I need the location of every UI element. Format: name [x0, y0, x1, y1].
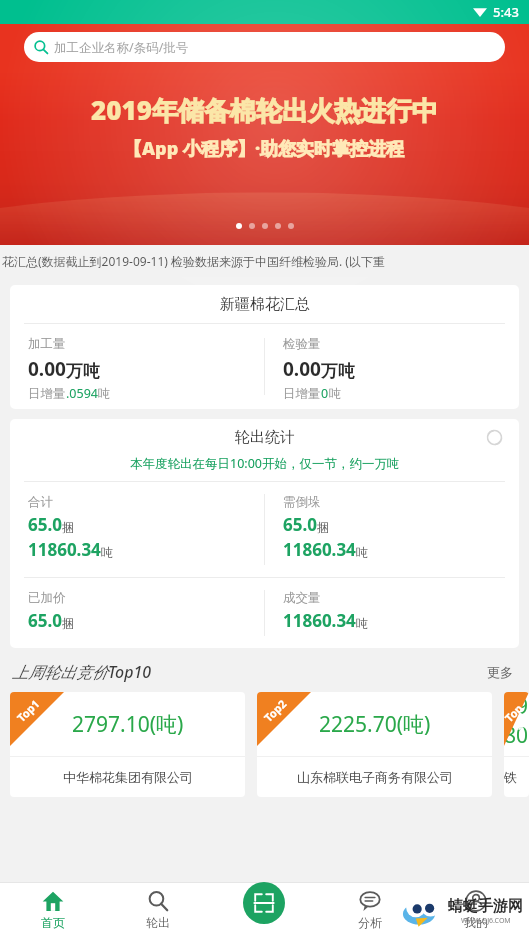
button[interactable]: 分析 — [317, 882, 423, 940]
staticText: 蜻蜓手游网 — [448, 897, 523, 916]
staticText: 万吨 — [321, 361, 355, 382]
staticText: 首页 — [41, 915, 65, 930]
staticText: 65.0 — [283, 513, 317, 536]
staticText: 花汇总(数据截止到2019-09-11) 检验数据来源于中国纤维检验局. (以下… — [2, 253, 385, 269]
staticText: 0.00 — [28, 356, 66, 382]
staticText: 万吨 — [66, 361, 100, 382]
button[interactable]: 更多 — [483, 660, 517, 684]
staticText: 65.0 — [28, 609, 62, 632]
staticText: 上周轮出竞价Top10 — [12, 661, 152, 683]
staticText: 山东棉联电子商务有限公司 — [297, 769, 453, 785]
staticText: 加工企业名称/条码/批号 — [54, 39, 189, 56]
staticText: 11860.34 — [283, 538, 356, 561]
button[interactable]: 2225.70(吨) — [257, 692, 492, 797]
button[interactable]: 扫一扫 — [243, 882, 285, 924]
staticText: 2797.10(吨) — [72, 710, 184, 739]
staticText: 成交量 — [283, 590, 321, 606]
staticText: 我的 — [464, 915, 488, 930]
staticText: 吨 — [356, 616, 369, 632]
button[interactable]: 刷新 — [481, 424, 507, 450]
staticText: 2019年储备棉轮出火热进行中 — [91, 92, 438, 128]
button[interactable]: 我的 — [423, 882, 529, 940]
staticText: 分析 — [358, 915, 382, 930]
staticText: 合计 — [28, 494, 53, 510]
staticText: 中华棉花集团有限公司 — [63, 769, 193, 785]
staticText: Top3 — [504, 700, 529, 736]
staticText: 吨 — [101, 545, 114, 561]
button[interactable]: 轮出 — [105, 882, 211, 940]
button[interactable]: 1980.00(吨) — [504, 692, 529, 797]
staticText: 轮出统计 — [235, 428, 295, 447]
staticText: 加工量 — [28, 336, 66, 352]
button[interactable]: 2797.10(吨) — [10, 692, 245, 797]
staticText: 已加价 — [28, 590, 66, 606]
staticText: 本年度轮出在每日10:00开始，仅一节，约一万吨 — [130, 455, 400, 472]
staticText: 捆 — [317, 520, 330, 536]
staticText: Top1 — [13, 696, 42, 725]
staticText: 11860.34 — [28, 538, 101, 561]
staticText: 轮出 — [146, 915, 170, 930]
staticText: 铁门关市 — [504, 769, 529, 785]
staticText: 1980.00(吨) — [504, 692, 529, 756]
staticText: 2225.70(吨) — [319, 710, 431, 739]
staticText: 捆 — [62, 520, 75, 536]
staticText: 新疆棉花汇总 — [220, 295, 310, 314]
staticText: 吨 — [329, 386, 342, 402]
button[interactable]: 加工企业名称/条码/批号 — [24, 32, 505, 62]
staticText: 更多 — [487, 664, 513, 680]
staticText: 吨 — [98, 386, 111, 402]
staticText: 日增量 — [283, 386, 321, 402]
staticText: Top2 — [260, 696, 289, 725]
staticText: 捆 — [62, 616, 75, 632]
staticText: 需倒垛 — [283, 494, 321, 510]
button[interactable]: 首页 — [0, 882, 105, 940]
staticText: 11860.34 — [283, 609, 356, 632]
staticText: 日增量 — [28, 386, 66, 402]
staticText: .0594 — [66, 385, 98, 402]
staticText: 【App 小程序】·助您实时掌控进程 — [124, 136, 405, 161]
staticText: 0.00 — [283, 356, 321, 382]
staticText: 5:43 — [493, 3, 519, 21]
staticText: 0 — [321, 385, 329, 402]
staticText: 65.0 — [28, 513, 62, 536]
staticText: 吨 — [356, 545, 369, 561]
staticText: 检验量 — [283, 336, 321, 352]
staticText: WWW.QJ6.COM — [461, 916, 511, 926]
